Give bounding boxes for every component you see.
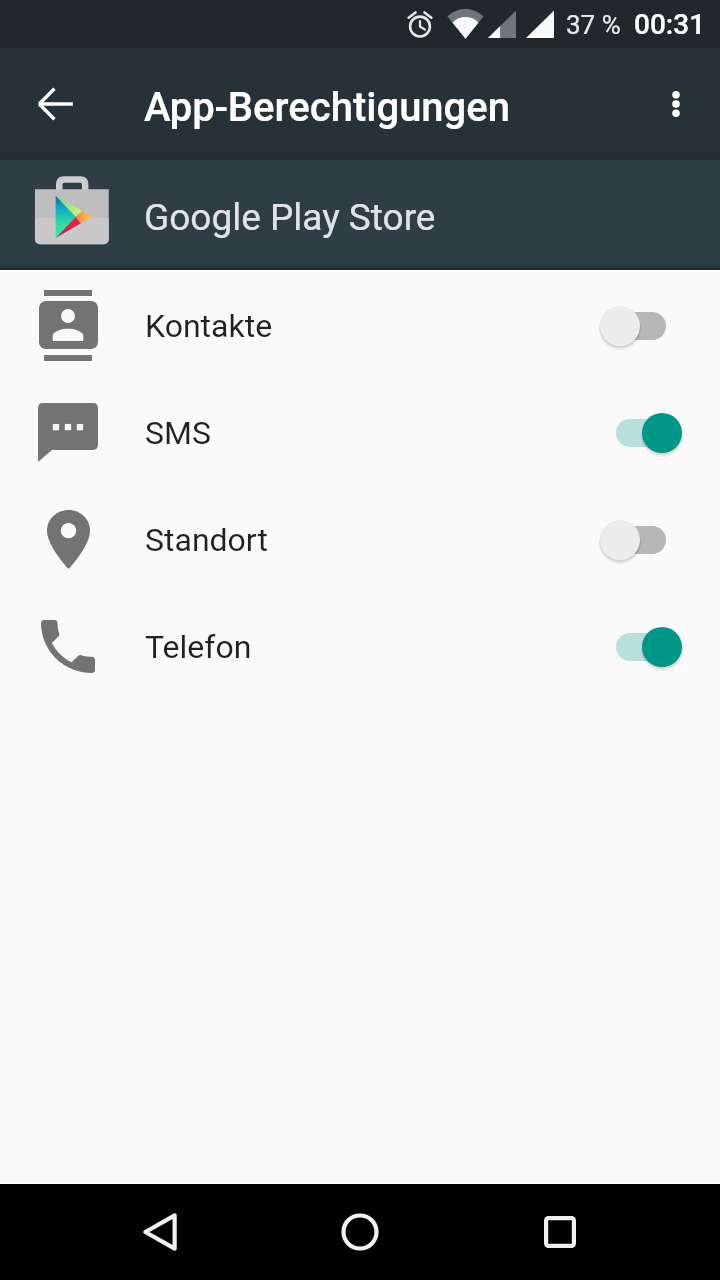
button[interactable]: Back [100,1184,220,1280]
staticText: Kontakte [145,307,599,345]
button[interactable]: Kontakte [0,272,720,379]
button[interactable]: Standort [0,486,720,593]
staticText: Google Play Store [144,196,436,239]
staticText: Standort [145,521,599,559]
button[interactable]: Telefon [0,593,720,700]
button[interactable]: SMS [0,379,720,486]
button[interactable] [599,609,683,685]
button[interactable] [599,288,683,364]
button[interactable]: Home [300,1184,420,1280]
staticText: 00:31 [634,8,706,41]
button[interactable]: More options [636,64,716,144]
staticText: 37 % [566,10,621,40]
button[interactable]: Back [16,64,96,144]
button[interactable]: Recents [500,1184,620,1280]
staticText: App-Berechtigungen [144,84,510,131]
staticText: SMS [145,414,599,452]
button[interactable]: Google Play Store [0,160,720,270]
staticText: Telefon [145,628,599,666]
button[interactable] [599,502,683,578]
button[interactable] [599,395,683,471]
